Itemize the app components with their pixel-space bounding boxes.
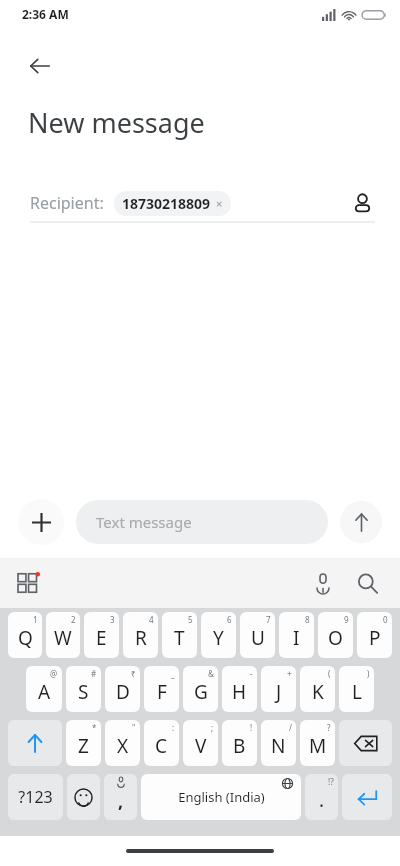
button[interactable]: * (66, 720, 101, 766)
staticText: S (78, 679, 89, 705)
button[interactable]: !? (305, 774, 338, 820)
staticText: 1 (33, 614, 38, 625)
staticText: / (289, 722, 292, 733)
button[interactable]: @ (26, 666, 62, 712)
staticText: H (232, 679, 247, 705)
button[interactable]: , (104, 774, 137, 820)
staticText: + (287, 668, 292, 679)
button[interactable]: 0 (357, 612, 392, 658)
staticText: M (309, 733, 327, 759)
staticText: 9 (344, 614, 349, 625)
staticText: 3 (110, 614, 115, 625)
button[interactable]: 8 (279, 612, 314, 658)
button[interactable]: # (66, 666, 101, 712)
button[interactable]: Emoji (67, 774, 100, 820)
button[interactable]: 1 (8, 612, 42, 658)
button[interactable]: ; (183, 720, 218, 766)
button[interactable]: - (222, 666, 257, 712)
staticText: R (135, 625, 147, 651)
staticText: C (155, 733, 168, 759)
button[interactable]: Back (18, 44, 62, 88)
staticText: 6 (227, 614, 232, 625)
staticText: Z (78, 733, 89, 759)
button[interactable]: Shift (8, 720, 62, 766)
button[interactable]: 18730218809 (114, 191, 231, 216)
button[interactable]: ?123 (8, 774, 63, 820)
button[interactable]: 3 (84, 612, 119, 658)
staticText: P (369, 625, 381, 651)
staticText: I (293, 625, 300, 651)
staticText: W (54, 625, 72, 651)
staticText: 8 (305, 614, 310, 625)
staticText: ) (367, 668, 370, 679)
button[interactable]: Add attachment (18, 499, 64, 545)
staticText: 4 (149, 614, 154, 625)
button[interactable]: 6 (201, 612, 236, 658)
staticText: Y (213, 625, 224, 651)
button[interactable]: / (261, 720, 296, 766)
button[interactable]: Enter (342, 774, 392, 820)
button[interactable]: ? (300, 720, 335, 766)
staticText: N (271, 733, 286, 759)
staticText: New message (28, 104, 205, 141)
staticText: @ (50, 668, 58, 679)
button[interactable]: Backspace (339, 720, 392, 766)
staticText: 7 (266, 614, 271, 625)
staticText: : (172, 722, 175, 733)
button[interactable]: Send (340, 501, 382, 543)
button[interactable]: ₹ (105, 666, 140, 712)
staticText: ( (328, 668, 331, 679)
staticText: , (118, 789, 124, 814)
staticText: 5 (188, 614, 193, 625)
button[interactable]: 7 (240, 612, 275, 658)
staticText: 0 (383, 614, 388, 625)
staticText: A (38, 679, 51, 705)
button[interactable]: Choose contact (344, 185, 380, 221)
staticText: Text message (96, 512, 192, 532)
button[interactable]: 5 (162, 612, 197, 658)
staticText: . (319, 787, 325, 813)
staticText: ₹ (131, 668, 136, 679)
staticText: D (116, 679, 130, 705)
staticText: G (194, 679, 208, 705)
staticText: _ (171, 668, 175, 679)
button[interactable]: Toolbar menu (10, 564, 48, 602)
button[interactable]: Text message (76, 500, 328, 544)
button[interactable]: Search (348, 564, 386, 602)
staticText: 2:36 AM (22, 6, 69, 22)
staticText: English (India) (178, 788, 265, 806)
staticText: V (195, 733, 207, 759)
button[interactable]: 4 (123, 612, 158, 658)
staticText: F (157, 679, 167, 705)
staticText: K (312, 679, 324, 705)
staticText: U (251, 625, 265, 651)
staticText: 18730218809 (122, 194, 211, 213)
button[interactable]: : (144, 720, 179, 766)
staticText: ?123 (18, 786, 53, 808)
button[interactable]: English (India) (141, 774, 301, 820)
staticText: Q (18, 625, 33, 651)
staticText: × (216, 196, 223, 211)
button[interactable]: _ (144, 666, 179, 712)
staticText: Recipient: (30, 192, 104, 214)
button[interactable]: " (105, 720, 140, 766)
button[interactable]: ! (222, 720, 257, 766)
button[interactable]: 9 (318, 612, 353, 658)
staticText: ! (250, 722, 253, 733)
staticText: B (233, 733, 246, 759)
button[interactable]: ) (339, 666, 374, 712)
button[interactable]: Voice input (304, 564, 342, 602)
staticText: 2 (71, 614, 76, 625)
staticText: X (117, 733, 129, 759)
staticText: " (132, 722, 136, 733)
button[interactable]: ( (300, 666, 335, 712)
staticText: T (174, 625, 185, 651)
button[interactable]: + (261, 666, 296, 712)
staticText: L (352, 679, 362, 705)
staticText: - (250, 668, 253, 679)
staticText: ? (327, 722, 331, 733)
button[interactable]: 2 (46, 612, 80, 658)
staticText: !? (328, 776, 334, 787)
staticText: # (91, 668, 97, 679)
button[interactable]: & (183, 666, 218, 712)
